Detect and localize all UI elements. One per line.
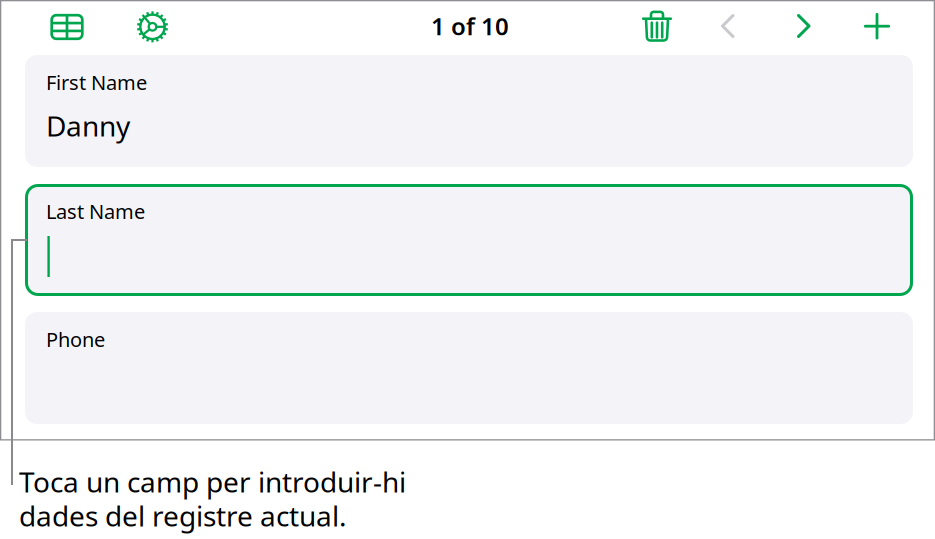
button[interactable]: Add record [863, 12, 891, 40]
staticText: First Name [46, 69, 147, 96]
staticText: Toca un camp per introduir-hi [19, 463, 406, 500]
button[interactable]: Next record [795, 13, 813, 39]
button[interactable]: Previous record [719, 13, 737, 39]
button[interactable]: Delete record [640, 8, 674, 46]
button[interactable]: First Name [25, 55, 913, 167]
staticText: Danny [46, 107, 130, 144]
button[interactable]: Format [134, 9, 170, 45]
button[interactable]: Tables [50, 13, 84, 40]
staticText: dades del registre actual. [19, 497, 347, 534]
staticText: Phone [46, 326, 105, 353]
staticText: 1 of 10 [431, 10, 509, 42]
button[interactable]: Phone [25, 312, 913, 424]
button[interactable]: Last Name [25, 184, 913, 296]
staticText: Last Name [46, 198, 145, 225]
